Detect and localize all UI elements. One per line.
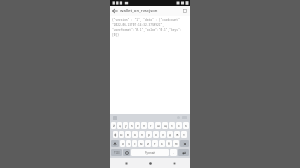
button[interactable]: Shift <box>111 140 119 147</box>
button[interactable]: е <box>135 122 140 129</box>
staticText: б <box>168 142 170 146</box>
button[interactable]: Backspace <box>180 140 189 147</box>
button[interactable]: н <box>141 122 147 129</box>
button[interactable]: Back <box>110 6 120 16</box>
button[interactable]: г <box>148 122 154 129</box>
button[interactable]: х <box>176 122 182 129</box>
staticText: я <box>122 142 124 146</box>
staticText: {"version" : "1", "data" : {"cardcount" <box>112 18 180 22</box>
button[interactable]: э <box>181 131 187 138</box>
button[interactable]: ж <box>174 131 180 138</box>
staticText: "userformat":"0.1","color":"0.1","keys": <box>112 28 182 32</box>
button[interactable]: щ <box>162 122 168 129</box>
button[interactable]: ш <box>155 122 161 129</box>
button[interactable]: ф <box>113 131 118 138</box>
button[interactable]: ч <box>126 140 131 147</box>
staticText: р <box>148 133 150 137</box>
staticText: ю <box>175 142 178 146</box>
button[interactable]: Recents <box>166 158 182 168</box>
button[interactable]: д <box>167 131 173 138</box>
button[interactable]: ъ <box>183 122 189 129</box>
button[interactable]: м <box>138 140 144 147</box>
staticText: с <box>134 142 136 146</box>
staticText: п <box>141 133 143 137</box>
button[interactable]: More options <box>180 6 190 16</box>
button[interactable]: й <box>111 122 116 129</box>
button[interactable]: ?123 <box>111 149 122 156</box>
staticText: ?123 <box>114 151 120 155</box>
staticText: э <box>183 133 185 137</box>
button[interactable]: т <box>152 140 158 147</box>
button[interactable]: Home <box>142 158 158 168</box>
staticText: й <box>113 124 115 128</box>
button[interactable]: ь <box>159 140 165 147</box>
staticText: м <box>140 142 143 146</box>
staticText: т <box>154 142 156 146</box>
button[interactable]: а <box>132 131 138 138</box>
button[interactable]: з <box>169 122 175 129</box>
staticText: а <box>134 133 136 137</box>
button[interactable]: л <box>160 131 166 138</box>
button[interactable]: ы <box>119 131 124 138</box>
button[interactable]: Русский <box>131 149 169 156</box>
button[interactable]: . <box>170 149 177 156</box>
button[interactable]: Emoji <box>123 149 130 156</box>
staticText: щ <box>164 124 167 128</box>
staticText: ж <box>176 133 179 137</box>
button[interactable]: в <box>125 131 131 138</box>
button[interactable]: у <box>123 122 128 129</box>
staticText: ъ <box>185 124 187 128</box>
staticText: л <box>162 133 164 137</box>
staticText: ь <box>161 142 163 146</box>
button[interactable]: с <box>132 140 137 147</box>
button[interactable]: и <box>145 140 151 147</box>
staticText: е <box>137 124 139 128</box>
button[interactable]: р <box>146 131 152 138</box>
staticText: д <box>169 133 171 137</box>
staticText: Русский <box>145 151 155 155</box>
staticText: ф <box>114 133 117 137</box>
button[interactable]: о <box>153 131 159 138</box>
staticText: у <box>125 124 127 128</box>
staticText: [0]} <box>112 33 119 37</box>
staticText: х <box>178 124 180 128</box>
staticText: wallet_on_rvsr.json <box>120 8 180 14</box>
staticText: з <box>171 124 173 128</box>
button[interactable]: Voice input <box>177 116 180 119</box>
button[interactable]: п <box>139 131 145 138</box>
button[interactable]: ц <box>117 122 122 129</box>
staticText: н <box>143 124 145 128</box>
staticText: "2022-06-13T07:14:32.375892Z", <box>112 23 165 27</box>
staticText: ц <box>119 124 121 128</box>
staticText: ш <box>157 124 160 128</box>
button[interactable]: Enter <box>178 149 189 156</box>
staticText: ы <box>120 133 123 137</box>
staticText: г <box>150 124 152 128</box>
staticText: к <box>131 124 133 128</box>
button[interactable]: б <box>166 140 172 147</box>
staticText: о <box>155 133 157 137</box>
staticText: . <box>173 151 174 155</box>
button[interactable]: Back <box>118 158 134 168</box>
staticText: и <box>147 142 149 146</box>
button[interactable]: ю <box>173 140 179 147</box>
button[interactable]: я <box>120 140 125 147</box>
staticText: в <box>127 133 129 137</box>
staticText: ч <box>128 142 130 146</box>
button[interactable]: к <box>129 122 134 129</box>
